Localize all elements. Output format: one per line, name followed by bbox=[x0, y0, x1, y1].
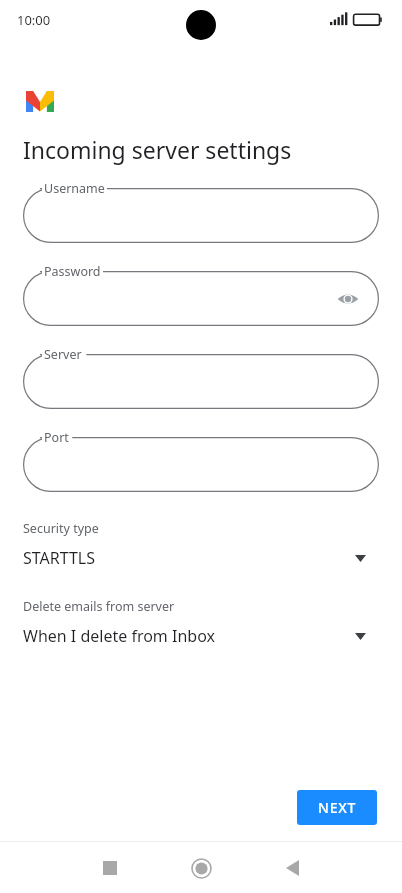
button[interactable]: Password bbox=[23, 271, 379, 326]
staticText: 10:00 bbox=[17, 11, 51, 29]
staticText: Incoming server settings bbox=[23, 134, 292, 165]
staticText: Password bbox=[44, 263, 101, 280]
button[interactable]: NEXT bbox=[297, 790, 377, 825]
button[interactable]: Security type bbox=[0, 520, 402, 569]
staticText: Server bbox=[44, 346, 82, 363]
button[interactable]: Port bbox=[23, 437, 379, 492]
staticText: Port bbox=[44, 429, 69, 446]
staticText: Delete emails from server bbox=[23, 598, 175, 615]
button[interactable]: Recent apps bbox=[88, 846, 132, 890]
staticText: NEXT bbox=[318, 798, 357, 817]
staticText: Username bbox=[44, 180, 105, 197]
button[interactable]: Home bbox=[179, 846, 223, 890]
staticText: STARTTLS bbox=[23, 547, 355, 569]
button[interactable]: Back bbox=[270, 846, 314, 890]
button[interactable]: Delete emails from server bbox=[0, 598, 402, 647]
staticText: Security type bbox=[23, 520, 99, 537]
staticText: When I delete from Inbox bbox=[23, 625, 355, 647]
button[interactable]: Server bbox=[23, 354, 379, 409]
button[interactable]: Username bbox=[23, 188, 379, 243]
button[interactable]: Show password bbox=[333, 284, 363, 314]
